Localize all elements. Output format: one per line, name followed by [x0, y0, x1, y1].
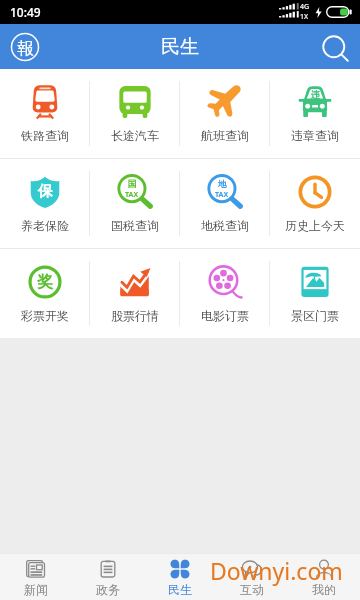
button[interactable]: 违 [270, 69, 360, 158]
staticText: 历史上今天 [285, 218, 345, 233]
button[interactable]: 地 [180, 159, 270, 248]
staticText: 民生 [168, 582, 192, 597]
staticText: 违 [311, 89, 320, 100]
staticText: 奖 [37, 272, 53, 292]
staticText: 4G [300, 2, 310, 12]
staticText: 我的 [312, 582, 336, 597]
staticText: TAX [215, 190, 229, 200]
staticText: 养老保险 [21, 218, 69, 233]
button[interactable]: 股票行情 [90, 249, 180, 338]
button[interactable]: 铁路查询 [0, 69, 90, 158]
staticText: 政务 [96, 582, 120, 597]
button[interactable]: 保 [0, 159, 90, 248]
staticText: 互动 [240, 582, 264, 597]
button[interactable]: 长途汽车 [90, 69, 180, 158]
staticText: 航班查询 [201, 128, 249, 143]
staticText: 彩票开奖 [21, 308, 69, 323]
button[interactable]: 互动 [216, 554, 288, 600]
button[interactable]: Logo [10, 32, 40, 62]
staticText: 新闻 [24, 582, 48, 597]
button[interactable]: Search [321, 34, 351, 64]
staticText: 民生 [161, 35, 199, 59]
staticText: 股票行情 [111, 308, 159, 323]
staticText: 1X [300, 12, 309, 22]
staticText: 电影订票 [201, 308, 249, 323]
staticText: 報 [17, 38, 34, 59]
button[interactable]: 民生 [144, 554, 216, 600]
staticText: Downyi.com [210, 555, 343, 586]
staticText: 国税查询 [111, 218, 159, 233]
button[interactable]: 国 [90, 159, 180, 248]
staticText: 10:49 [10, 4, 41, 20]
button[interactable]: 新闻 [0, 554, 72, 600]
button[interactable]: 电影订票 [180, 249, 270, 338]
button[interactable]: 景区门票 [270, 249, 360, 338]
button[interactable]: 我的 [288, 554, 360, 600]
staticText: 长途汽车 [111, 128, 159, 143]
button[interactable]: 航班查询 [180, 69, 270, 158]
staticText: 地 [218, 179, 227, 190]
staticText: 违章查询 [291, 128, 339, 143]
staticText: TAX [125, 190, 139, 200]
staticText: 景区门票 [291, 308, 339, 323]
button[interactable]: 政务 [72, 554, 144, 600]
button[interactable]: 奖 [0, 249, 90, 338]
staticText: 地税查询 [201, 218, 249, 233]
staticText: 铁路查询 [21, 128, 69, 143]
staticText: 保 [38, 182, 53, 201]
button[interactable]: 历史上今天 [270, 159, 360, 248]
staticText: 国 [128, 179, 137, 190]
